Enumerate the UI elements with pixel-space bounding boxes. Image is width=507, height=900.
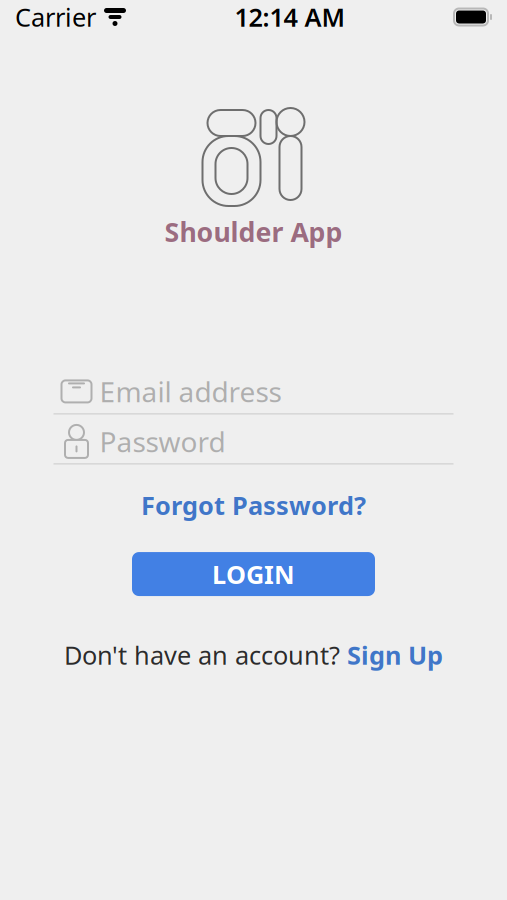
staticText: Shoulder App [164,214,342,249]
button[interactable]: LOGIN [132,552,375,596]
staticText: 12:14 AM [234,0,345,34]
staticText: LOGIN [212,557,295,591]
staticText: Don't have an account? [64,638,340,672]
button[interactable]: Forgot Password? [127,480,380,530]
staticText: Password [99,423,225,460]
staticText: Email address [99,373,281,410]
staticText: Sign Up [347,638,443,672]
staticText: Forgot Password? [141,488,366,522]
button[interactable]: Don't have an account? [56,632,451,678]
staticText: Carrier [15,0,96,34]
